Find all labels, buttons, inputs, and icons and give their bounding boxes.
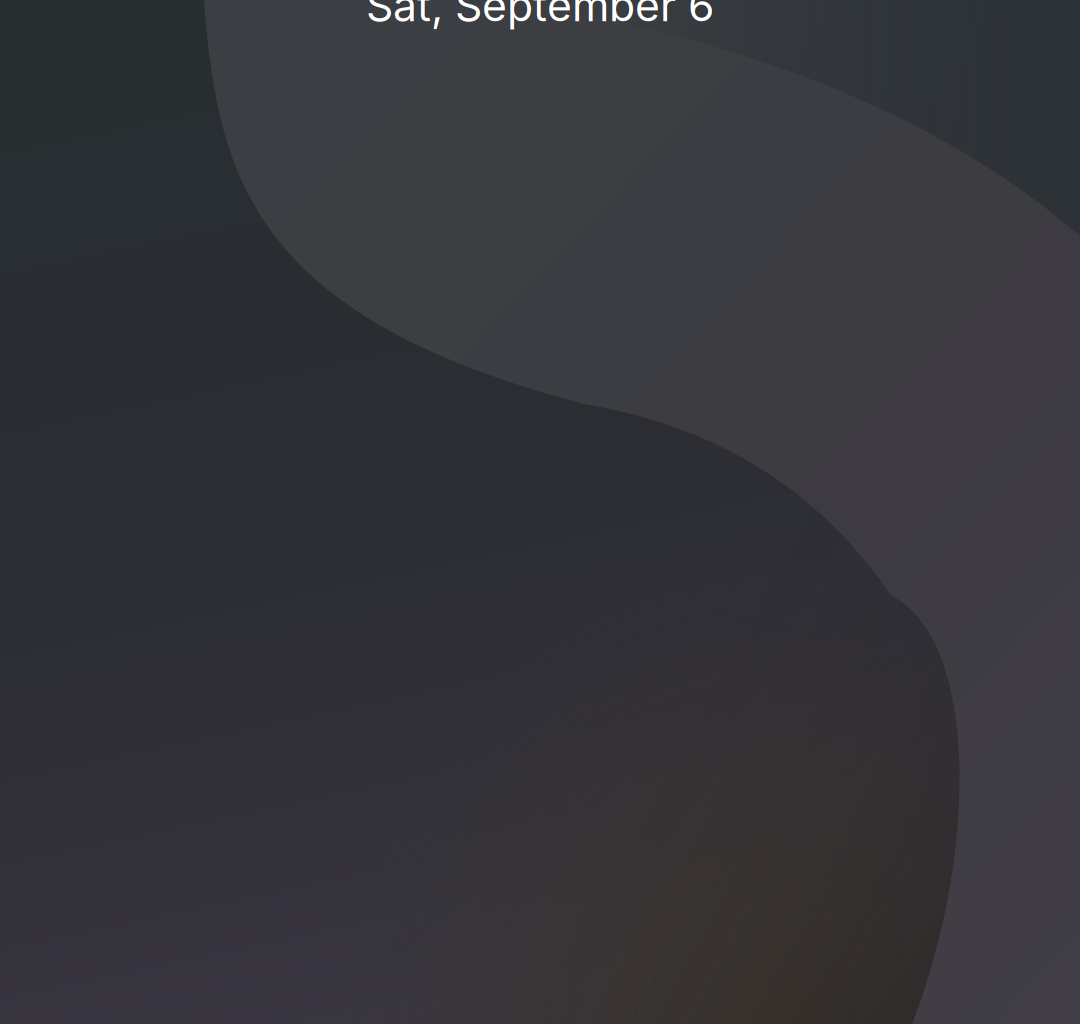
staticText: Sat, September 6 — [366, 0, 714, 32]
